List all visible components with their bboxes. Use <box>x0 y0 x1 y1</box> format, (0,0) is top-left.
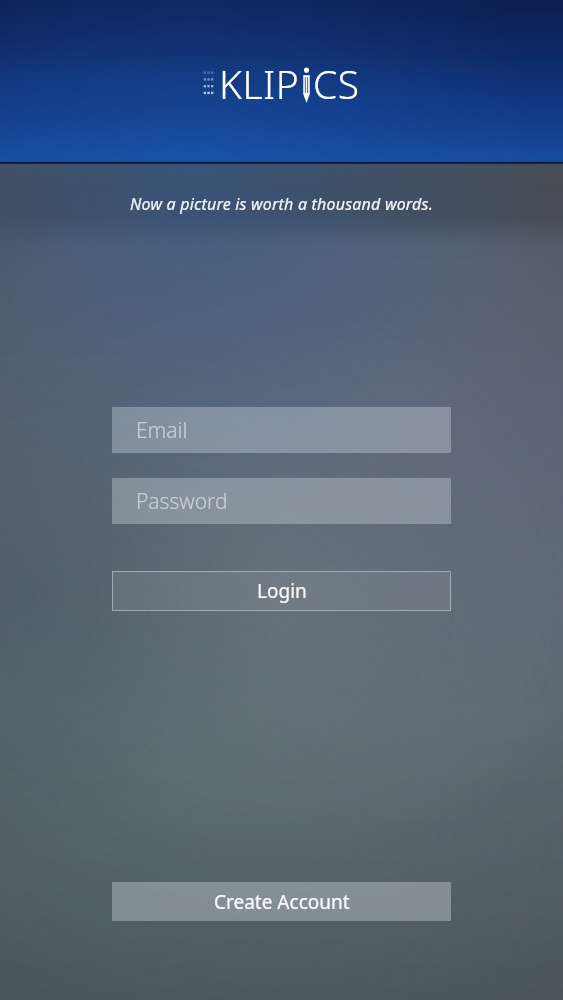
staticText: Now a picture is worth a thousand words. <box>130 193 433 215</box>
staticText: Email <box>136 416 188 445</box>
staticText: CS <box>313 57 360 110</box>
staticText: Login <box>257 578 307 604</box>
button[interactable]: Login <box>112 571 451 611</box>
staticText: Create Account <box>214 889 350 915</box>
button[interactable]: Create Account <box>112 882 451 921</box>
staticText: Password <box>136 487 228 516</box>
button[interactable]: Password <box>112 478 451 524</box>
button[interactable]: Email <box>112 407 451 453</box>
staticText: KLIP <box>219 57 300 110</box>
